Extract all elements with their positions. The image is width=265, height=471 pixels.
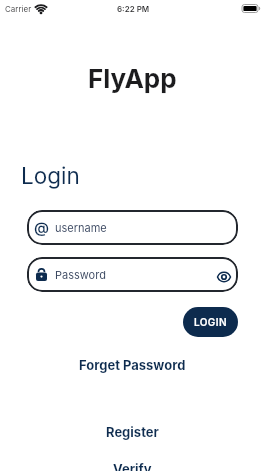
button[interactable]: LOGIN: [183, 307, 238, 337]
button[interactable]: Password: [27, 257, 238, 292]
staticText: Login: [21, 162, 80, 189]
button[interactable]: @: [27, 210, 238, 245]
button[interactable]: Forget Password: [79, 357, 186, 373]
staticText: Password: [55, 268, 106, 281]
staticText: 6:22 PM: [117, 4, 150, 14]
button[interactable]: Verify: [113, 461, 152, 471]
staticText: username: [55, 221, 107, 234]
staticText: Register: [106, 424, 159, 440]
staticText: Carrier: [5, 4, 32, 14]
button[interactable]: Register: [106, 424, 159, 440]
staticText: Verify: [113, 461, 152, 471]
staticText: LOGIN: [194, 316, 227, 328]
staticText: FlyApp: [88, 63, 177, 94]
staticText: @: [34, 218, 49, 236]
staticText: Forget Password: [79, 357, 186, 373]
